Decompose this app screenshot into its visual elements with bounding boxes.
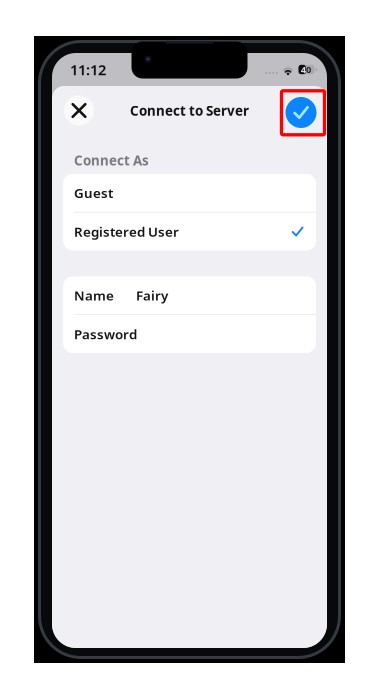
staticText: Guest bbox=[74, 184, 113, 202]
staticText: 4 bbox=[301, 63, 306, 76]
button[interactable]: Name bbox=[63, 276, 316, 314]
button[interactable]: Password bbox=[63, 315, 316, 353]
button[interactable]: Registered User bbox=[63, 212, 316, 250]
button[interactable]: Guest bbox=[63, 174, 316, 212]
staticText: Connect As bbox=[74, 151, 149, 169]
staticText: Fairy bbox=[136, 286, 168, 304]
staticText: Connect to Server bbox=[130, 102, 249, 119]
staticText: 0 bbox=[306, 63, 311, 76]
staticText: Registered User bbox=[74, 223, 179, 240]
staticText: Password bbox=[74, 325, 137, 343]
staticText: Name bbox=[74, 286, 114, 304]
button[interactable]: Close bbox=[62, 93, 96, 127]
staticText: 11:12 bbox=[70, 60, 106, 79]
button[interactable]: Done bbox=[281, 88, 325, 132]
